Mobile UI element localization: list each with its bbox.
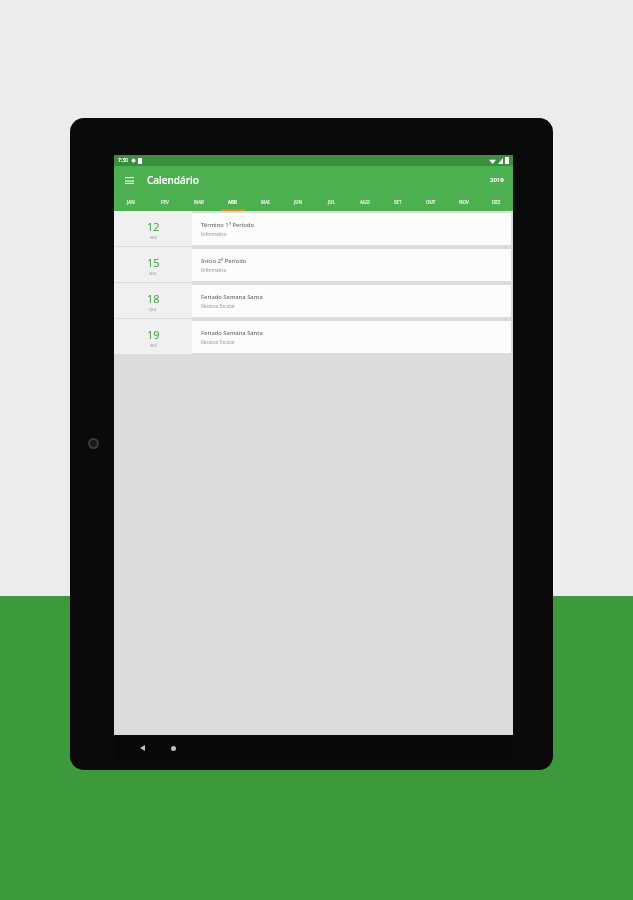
staticText: Informativo: [201, 267, 227, 273]
staticText: Término 1º Período: [201, 221, 254, 229]
button[interactable]: 19: [114, 319, 513, 355]
button[interactable]: Home: [162, 735, 184, 761]
staticText: JAN: [127, 199, 135, 205]
staticText: DEZ: [492, 199, 501, 205]
staticText: NOV: [459, 199, 469, 205]
button[interactable]: 2019: [490, 176, 504, 184]
staticText: MAR: [194, 199, 204, 205]
button[interactable]: 18: [114, 283, 513, 319]
button[interactable]: 12: [114, 211, 513, 247]
staticText: Recesso Escolar: [201, 303, 236, 309]
button[interactable]: Open navigation menu: [120, 171, 138, 189]
button[interactable]: SET: [381, 193, 414, 211]
staticText: 7:30: [118, 157, 128, 164]
staticText: Feriado Semana Santa: [201, 293, 263, 301]
staticText: OUT: [426, 199, 436, 205]
staticText: SEX: [150, 235, 157, 240]
staticText: ABR: [228, 199, 237, 205]
staticText: Recesso Escolar: [201, 339, 236, 345]
button[interactable]: JAN: [114, 193, 148, 211]
staticText: Início 2º Período: [201, 257, 247, 265]
staticText: 19: [147, 327, 160, 342]
staticText: JUL: [328, 199, 336, 205]
staticText: 15: [147, 255, 160, 270]
staticText: Calendário: [147, 173, 199, 187]
staticText: FEV: [161, 199, 169, 205]
button[interactable]: AGO: [348, 193, 381, 211]
staticText: AGO: [360, 199, 370, 205]
staticText: SEX: [150, 343, 157, 348]
button[interactable]: Back: [131, 735, 153, 761]
staticText: 2019: [490, 176, 504, 184]
staticText: SEG: [149, 271, 157, 276]
staticText: Informativo: [201, 231, 227, 237]
button[interactable]: NOV: [447, 193, 480, 211]
staticText: QUI: [149, 307, 157, 312]
button[interactable]: 15: [114, 247, 513, 283]
staticText: 12: [147, 219, 160, 234]
button[interactable]: JUL: [315, 193, 348, 211]
button[interactable]: FEV: [148, 193, 182, 211]
button[interactable]: DEZ: [480, 193, 513, 211]
button[interactable]: MAR: [182, 193, 216, 211]
staticText: JUN: [294, 199, 303, 205]
button[interactable]: JUN: [282, 193, 315, 211]
button[interactable]: OUT: [414, 193, 447, 211]
staticText: MAI: [261, 199, 270, 205]
staticText: SET: [394, 199, 402, 205]
staticText: Feriado Semana Santa: [201, 329, 263, 337]
button[interactable]: ABR: [216, 193, 249, 211]
button[interactable]: MAI: [249, 193, 282, 211]
staticText: 18: [147, 291, 160, 306]
